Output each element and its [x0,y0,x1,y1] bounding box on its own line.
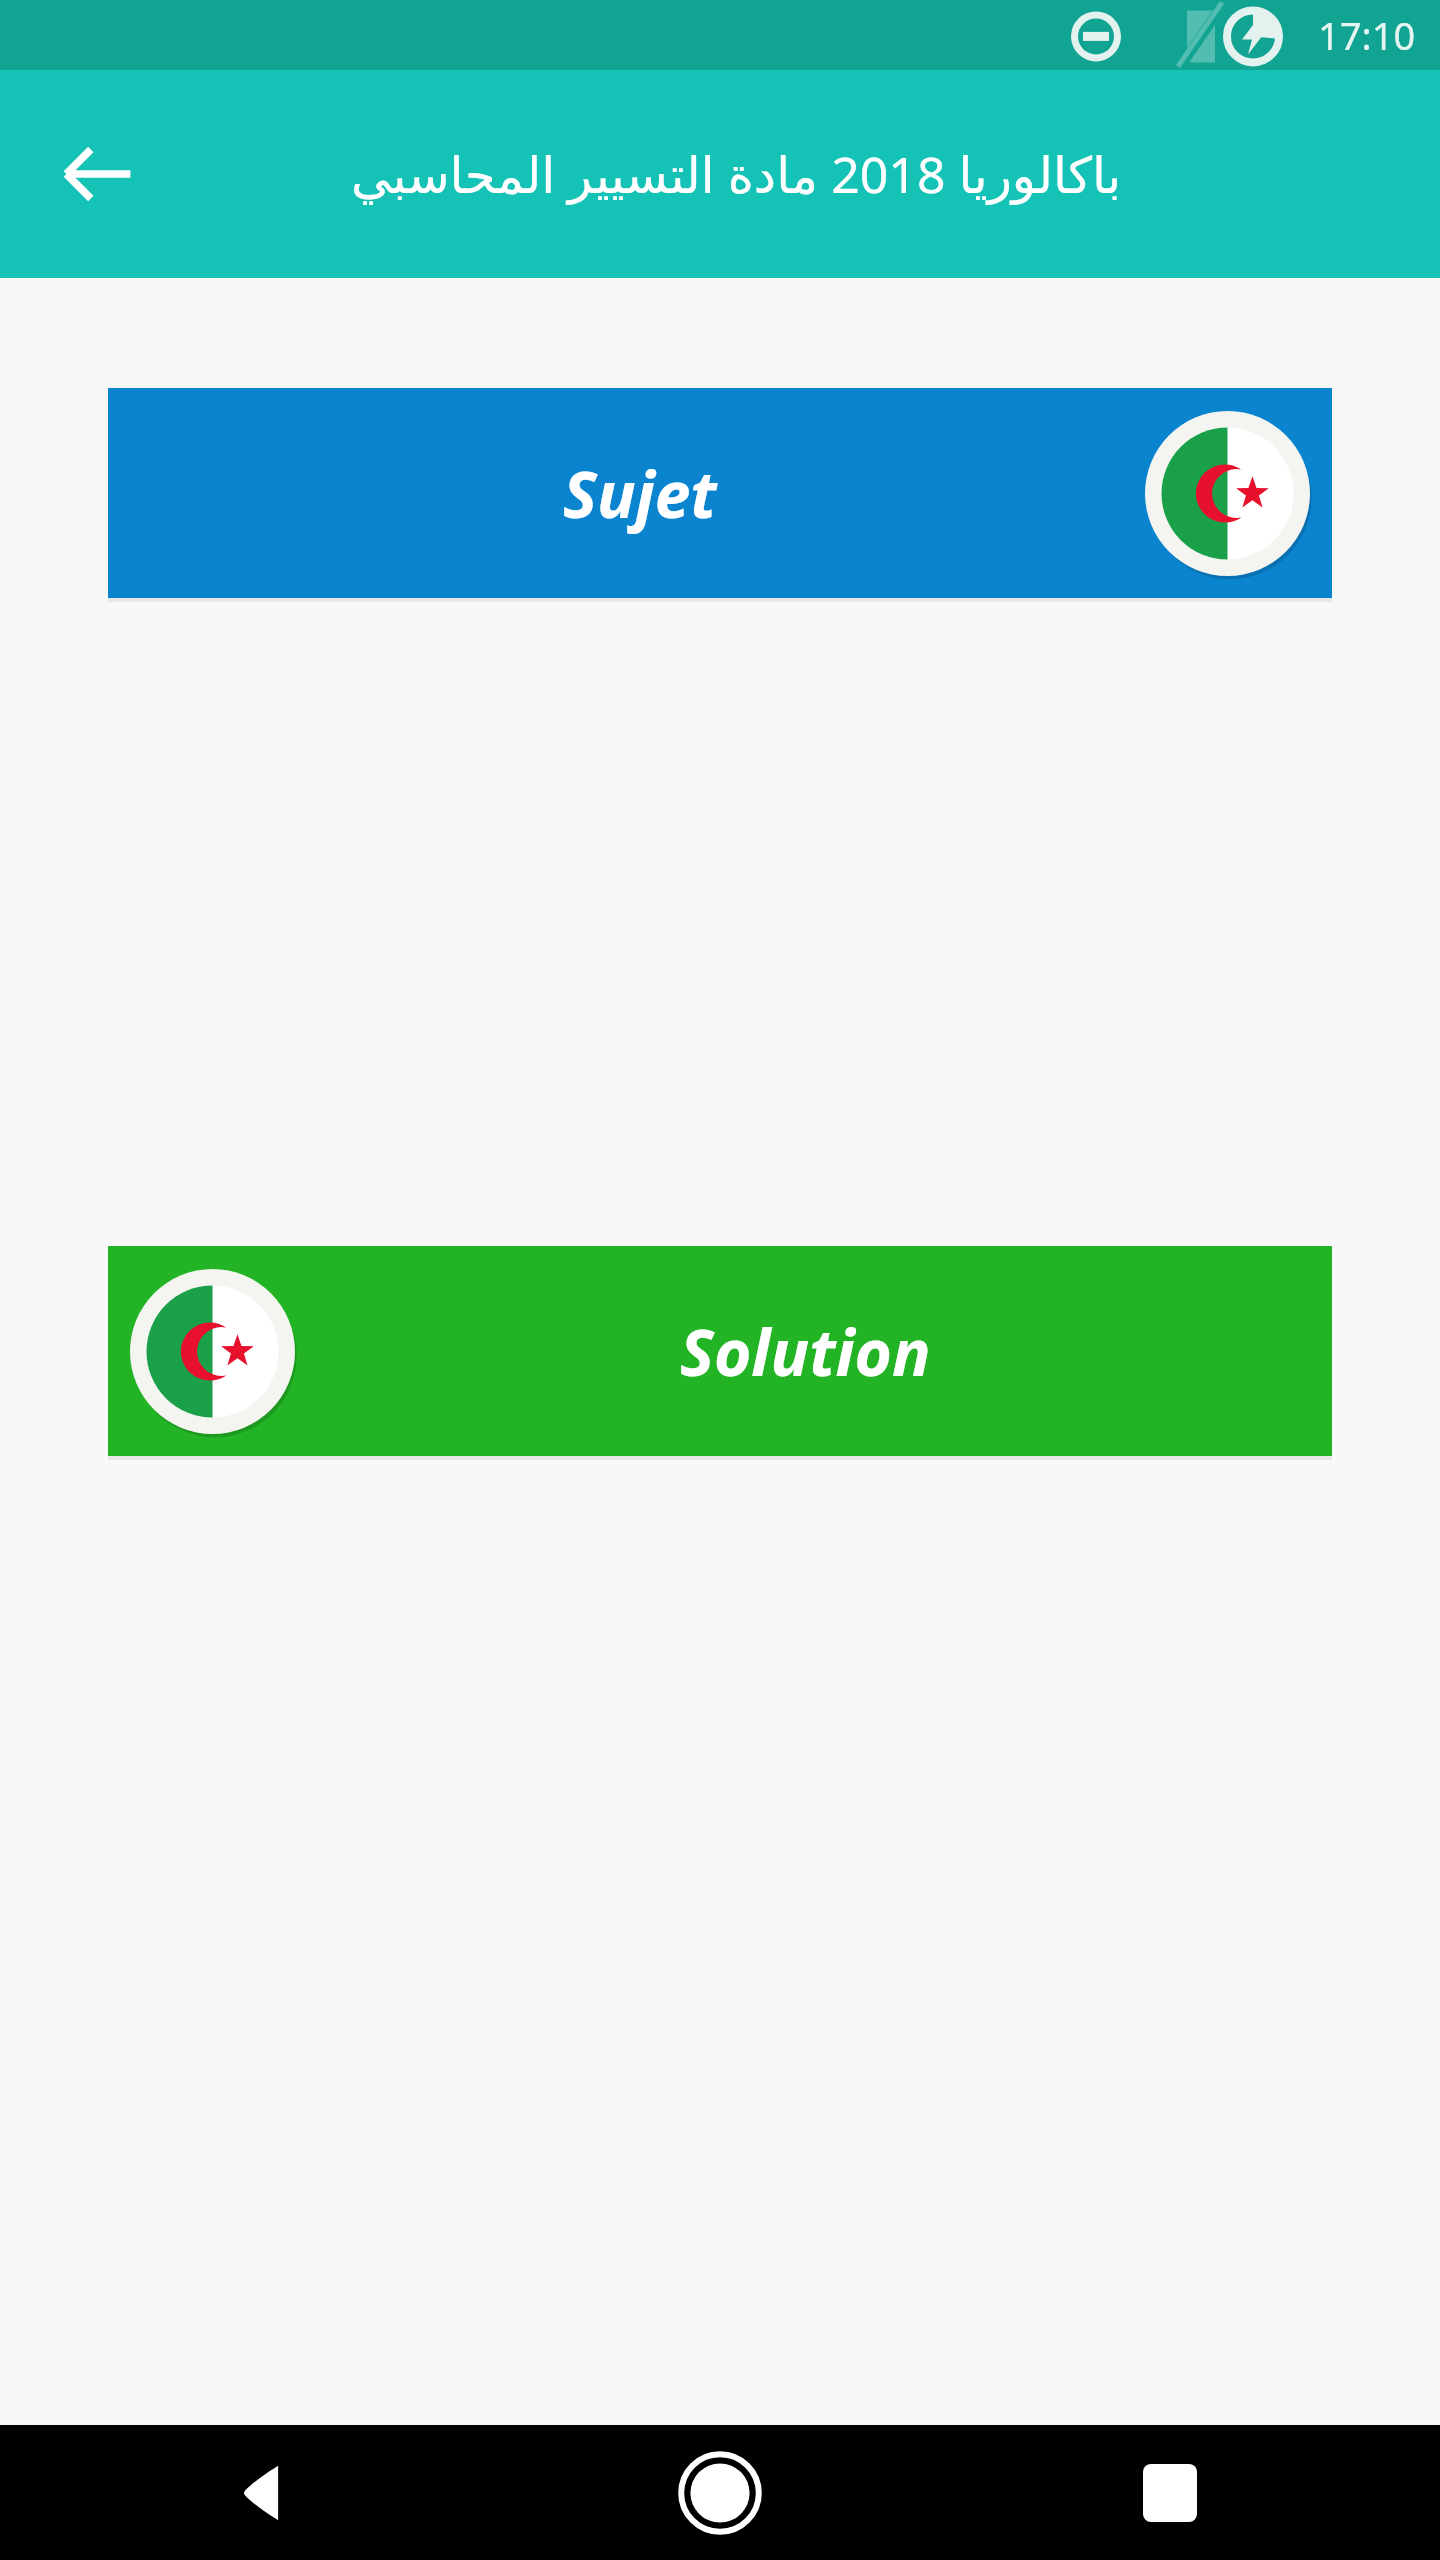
staticText: 17:10 [1318,9,1416,61]
button[interactable]: Back [215,2438,325,2548]
staticText: Solution [680,1308,931,1395]
button[interactable]: Solution [108,1246,1332,1456]
button[interactable]: Home [665,2438,775,2548]
button[interactable]: Back [38,114,158,234]
staticText: Sujet [563,450,717,537]
button[interactable]: Recent apps [1115,2438,1225,2548]
staticText: باكالوريا 2018 مادة التسيير المحاسبي [156,140,1316,208]
button[interactable]: Sujet [108,388,1332,598]
